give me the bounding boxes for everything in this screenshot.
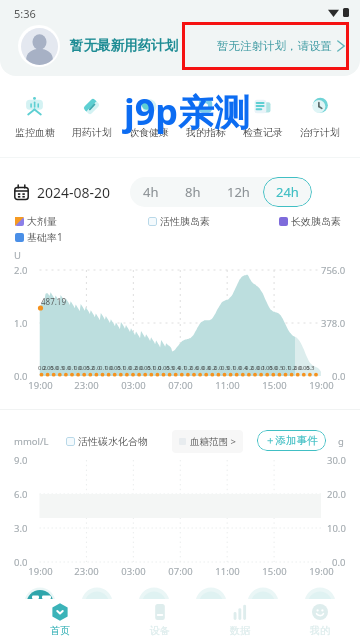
staticText: 长效胰岛素 (291, 215, 341, 228)
staticText: U (14, 249, 21, 262)
staticText: 0.0 (123, 364, 132, 372)
button[interactable]: 数据 (212, 599, 268, 637)
button[interactable]: 8h (172, 177, 214, 207)
staticText: 5:36 (14, 6, 36, 21)
staticText: 0.0 (233, 364, 242, 372)
staticText: 基础率1 (27, 230, 63, 244)
staticText: 0.0 (251, 364, 260, 372)
staticText: 0.05 (298, 364, 310, 372)
staticText: 2.0 (14, 264, 28, 277)
staticText: 0.1 (178, 364, 187, 372)
staticText: 0.1 (227, 364, 236, 372)
staticText: 数据 (230, 624, 250, 637)
staticText: 暂无注射计划，请设置 (217, 39, 332, 53)
staticText: 12h (227, 183, 250, 201)
staticText: 活性胰岛素 (160, 215, 210, 228)
staticText: 23:00 (74, 379, 99, 392)
staticText: 0.05 (42, 364, 54, 372)
staticText: 0.0 (153, 364, 162, 372)
staticText: 30.0 (327, 454, 346, 467)
staticText: 0.0 (294, 364, 303, 372)
staticText: 756.0 (321, 264, 346, 277)
staticText: 0.8 (202, 364, 211, 372)
staticText: 19:00 (28, 379, 53, 392)
staticText: g (338, 435, 344, 448)
staticText: 0.1 (282, 364, 291, 372)
staticText: 0.05 (78, 364, 90, 372)
staticText: 0.2 (184, 364, 193, 372)
staticText: 我的 (310, 624, 330, 637)
staticText: 检查记录 (243, 126, 283, 139)
staticText: 487.19 (41, 296, 67, 307)
staticText: 0.0 (196, 364, 205, 372)
staticText: 0.2 (288, 364, 297, 372)
staticText: 0.5 (275, 364, 284, 372)
button[interactable]: 首页 (32, 599, 88, 637)
button[interactable]: Profile (18, 25, 60, 67)
staticText: 8h (185, 183, 201, 201)
staticText: 0.0 (269, 364, 278, 372)
staticText: 0.2 (245, 364, 254, 372)
staticText: 20.0 (327, 488, 346, 501)
staticText: 0.1 (117, 364, 126, 372)
staticText: 0.5 (221, 364, 230, 372)
staticText: 0.0 (214, 364, 223, 372)
staticText: 378.0 (321, 317, 346, 330)
staticText: 0.0 (50, 364, 59, 372)
staticText: 血糖范围 > (190, 435, 236, 448)
staticText: 0.05 (109, 364, 121, 372)
staticText: 11:00 (215, 565, 240, 578)
staticText: 0.5 (56, 364, 65, 372)
staticText: ＋添加事件 (265, 434, 318, 447)
button[interactable]: 监控血糖 (6, 96, 63, 139)
staticText: 9.0 (14, 454, 28, 467)
button[interactable]: 血糖范围 > (172, 430, 243, 453)
button[interactable]: 24h (263, 177, 312, 207)
staticText: 0.1 (147, 364, 156, 372)
button[interactable]: 用药计划 (63, 96, 120, 139)
staticText: 0.0 (14, 556, 28, 569)
staticText: 0.6 (190, 364, 199, 372)
staticText: 23:00 (74, 565, 99, 578)
staticText: 0.0 (62, 364, 71, 372)
button[interactable]: 我的指标 (177, 96, 234, 139)
staticText: 4h (143, 183, 159, 201)
staticText: 6.0 (14, 488, 28, 501)
staticText: 暂无最新用药计划 (70, 37, 178, 54)
staticText: 0.2 (86, 364, 95, 372)
staticText: 0.0 (14, 370, 28, 383)
staticText: 大剂量 (27, 215, 57, 228)
staticText: 首页 (50, 624, 70, 637)
staticText: 0.0 (332, 556, 346, 569)
button[interactable]: 设备 (132, 599, 188, 637)
button[interactable]: 治疗计划 (291, 96, 348, 139)
button[interactable]: 饮食健康 (120, 96, 177, 139)
staticText: 设备 (150, 624, 170, 637)
button[interactable]: 检查记录 (234, 96, 291, 139)
staticText: 0.5 (166, 364, 175, 372)
button[interactable]: 4h (130, 177, 172, 207)
staticText: 0.1 (257, 364, 266, 372)
staticText: 0.3 (306, 364, 315, 372)
staticText: mmol/L (14, 435, 49, 448)
staticText: 0.4 (172, 364, 181, 372)
staticText: 0.0 (105, 364, 114, 372)
button[interactable]: 我的 (292, 599, 348, 637)
staticText: 07:00 (168, 379, 193, 392)
staticText: 15:00 (262, 379, 287, 392)
staticText: 0.05 (139, 364, 151, 372)
staticText: 活性碳水化合物 (78, 435, 148, 448)
staticText: 0.0 (135, 364, 144, 372)
staticText: 0.0 (92, 364, 101, 372)
staticText: 0.2 (208, 364, 217, 372)
staticText: 19:00 (309, 379, 334, 392)
button[interactable]: ＋添加事件 (257, 430, 326, 451)
staticText: 0.4 (239, 364, 248, 372)
staticText: 0.0 (332, 370, 346, 383)
staticText: 0.2 (38, 364, 47, 372)
staticText: 0.05 (261, 364, 273, 372)
staticText: j9p亲测 (124, 87, 251, 136)
button[interactable]: 12h (214, 177, 263, 207)
button[interactable]: 暂无注射计划，请设置 (214, 36, 348, 56)
staticText: 11:00 (215, 379, 240, 392)
